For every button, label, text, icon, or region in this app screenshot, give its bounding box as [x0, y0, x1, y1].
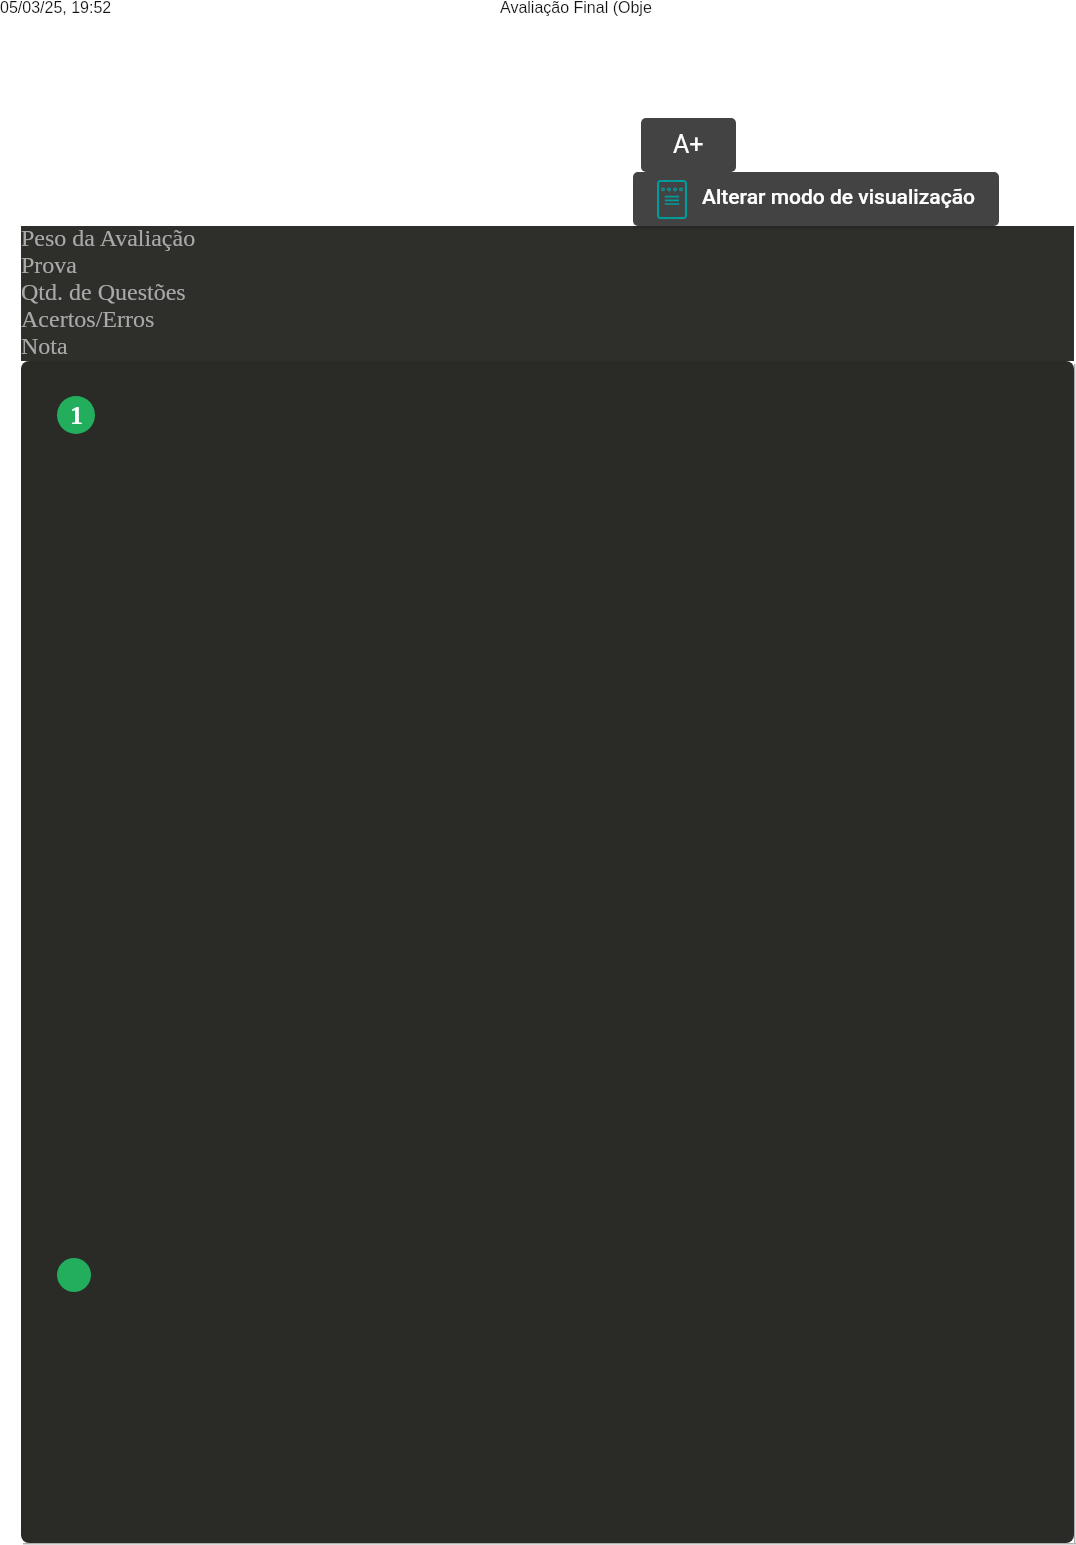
- staticText: Alterar modo de visualização: [702, 185, 975, 210]
- button[interactable]: 1: [57, 396, 95, 434]
- button[interactable]: Alterar modo de visualização: [633, 172, 999, 226]
- other: Alterar modo de visualização: [657, 180, 687, 219]
- staticText: Peso da Avaliação Prova Qtd. de Questões…: [21, 225, 196, 360]
- button[interactable]: Questão respondida: [57, 1258, 91, 1292]
- staticText: 1: [70, 401, 83, 430]
- staticText: A+: [673, 130, 704, 159]
- staticText: 05/03/25, 19:52: [0, 0, 112, 17]
- staticText: Avaliação Final (Obje: [500, 0, 652, 17]
- button[interactable]: A+: [641, 118, 736, 172]
